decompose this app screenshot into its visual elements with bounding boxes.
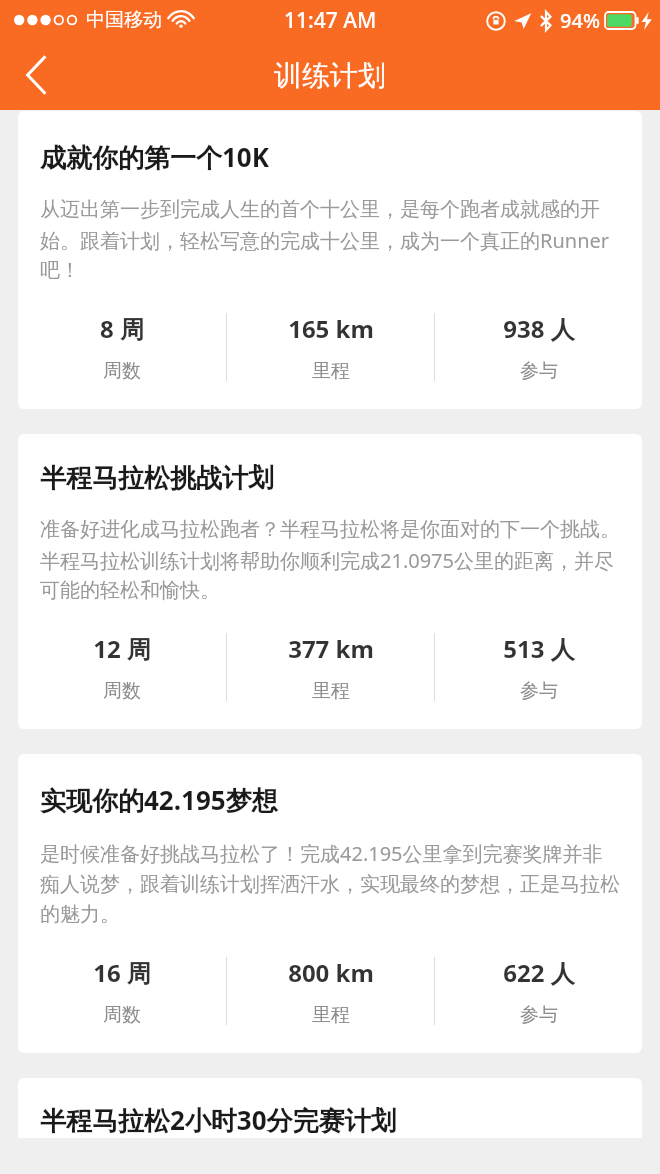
staticText: 准备好进化成马拉松跑者？半程马拉松将是你面对的下一个挑战。半程马拉松训练计划将帮… [40, 517, 620, 603]
staticText: 12 周 [93, 632, 151, 665]
staticText: 从迈出第一步到完成人生的首个十公里，是每个跑者成就感的开始。跟着计划，轻松写意的… [40, 197, 620, 283]
button[interactable]: 返回 [0, 40, 72, 110]
staticText: 94% [560, 7, 600, 34]
staticText: 377 km [288, 632, 374, 665]
staticText: 16 周 [93, 956, 151, 989]
staticText: 513 人 [503, 632, 575, 665]
staticText: 中国移动 [86, 8, 162, 32]
staticText: 165 km [288, 312, 374, 345]
staticText: 参与 [520, 679, 558, 703]
staticText: 半程马拉松挑战计划 [40, 462, 274, 495]
staticText: 是时候准备好挑战马拉松了！完成42.195公里拿到完赛奖牌并非痴人说梦，跟着训练… [40, 840, 620, 927]
staticText: 里程 [312, 1003, 350, 1027]
button[interactable]: 半程马拉松2小时30分完赛计划 [18, 1078, 642, 1138]
staticText: 11:47 AM [284, 6, 377, 35]
staticText: 训练计划 [274, 58, 386, 93]
staticText: 参与 [520, 359, 558, 383]
staticText: 周数 [103, 679, 141, 703]
button[interactable]: 成就你的第一个10K [18, 111, 642, 409]
staticText: 938 人 [503, 312, 575, 345]
staticText: 周数 [103, 359, 141, 383]
staticText: 里程 [312, 359, 350, 383]
staticText: 8 周 [100, 312, 144, 345]
staticText: 参与 [520, 1003, 558, 1027]
staticText: 800 km [288, 956, 374, 989]
staticText: 周数 [103, 1003, 141, 1027]
button[interactable]: 半程马拉松挑战计划 [18, 434, 642, 729]
staticText: 622 人 [503, 956, 575, 989]
staticText: 半程马拉松2小时30分完赛计划 [40, 1102, 397, 1138]
button[interactable]: 实现你的42.195梦想 [18, 754, 642, 1053]
staticText: 成就你的第一个10K [40, 139, 270, 175]
staticText: 里程 [312, 679, 350, 703]
staticText: 实现你的42.195梦想 [40, 782, 278, 818]
